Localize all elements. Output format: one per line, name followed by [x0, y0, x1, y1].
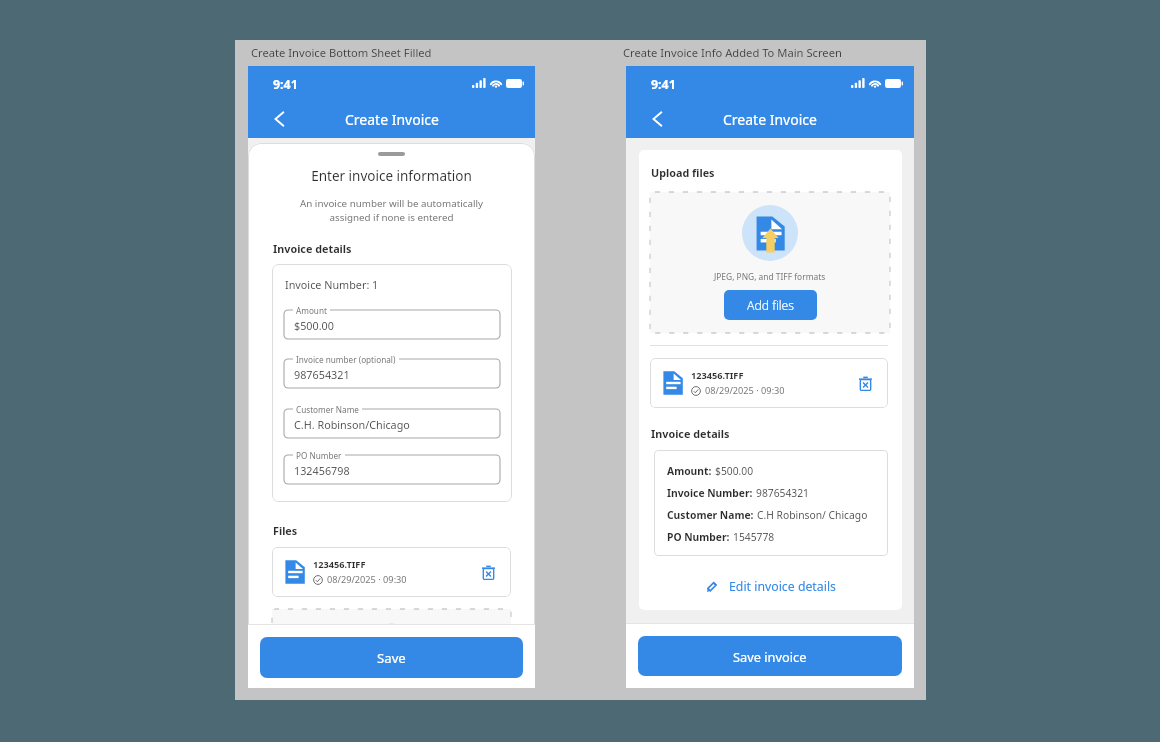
staticText: $500.00 — [715, 464, 754, 478]
staticText: 123456.TIFF — [691, 369, 744, 382]
staticText: 1545778 — [733, 530, 775, 544]
staticText: Save — [377, 649, 406, 667]
button[interactable]: Delete file — [482, 565, 495, 580]
staticText: 987654321 — [294, 367, 350, 382]
staticText: Files — [273, 523, 298, 538]
staticText: C.H Robinson/ Chicago — [757, 508, 868, 522]
staticText: Create Invoice — [345, 110, 439, 129]
staticText: 9:41 — [273, 76, 298, 93]
staticText: Invoice details — [651, 426, 730, 441]
staticText: An invoice number will be automatically … — [270, 197, 513, 224]
staticText: 08/29/2025 · 09:30 — [705, 384, 785, 397]
button[interactable]: 123456.TIFF — [650, 358, 888, 408]
button[interactable]: Edit invoice details — [639, 578, 902, 595]
button[interactable]: Add files — [724, 290, 817, 320]
staticText: Amount: — [667, 464, 715, 478]
staticText: Edit invoice details — [729, 578, 836, 595]
staticText: Enter invoice information — [248, 167, 535, 185]
staticText: Save invoice — [733, 648, 807, 665]
button[interactable]: Delete file — [859, 376, 872, 391]
staticText: Invoice Number: — [667, 486, 756, 500]
staticText: 9:41 — [651, 76, 676, 93]
staticText: C.H. Robinson/Chicago — [294, 417, 410, 432]
staticText: Add files — [747, 297, 795, 314]
staticText: PO Number: — [667, 530, 733, 544]
staticText: 08/29/2025 · 09:30 — [327, 573, 407, 586]
button[interactable]: Back — [647, 107, 671, 131]
staticText: Customer Name — [296, 404, 359, 415]
button[interactable]: Save — [260, 637, 523, 678]
staticText: 132456798 — [294, 463, 350, 478]
staticText: JPEG, PNG, and TIFF formats — [714, 271, 826, 282]
staticText: $500.00 — [294, 318, 334, 333]
staticText: 987654321 — [756, 486, 810, 500]
staticText: Create Invoice Bottom Sheet Filled — [251, 45, 432, 60]
staticText: Amount — [296, 305, 327, 316]
staticText: Create Invoice — [723, 110, 817, 129]
staticText: Invoice Number: 1 — [285, 277, 379, 292]
staticText: Create Invoice Info Added To Main Screen — [623, 45, 842, 60]
button[interactable]: Back — [269, 107, 293, 131]
staticText: Customer Name: — [667, 508, 757, 522]
staticText: 123456.TIFF — [313, 558, 366, 571]
button[interactable]: 123456.TIFF — [272, 547, 511, 597]
staticText: Invoice details — [273, 241, 352, 256]
staticText: Invoice number (optional) — [296, 354, 396, 365]
staticText: PO Number — [296, 450, 342, 461]
staticText: Upload files — [651, 165, 715, 180]
button[interactable]: Save invoice — [638, 636, 902, 676]
